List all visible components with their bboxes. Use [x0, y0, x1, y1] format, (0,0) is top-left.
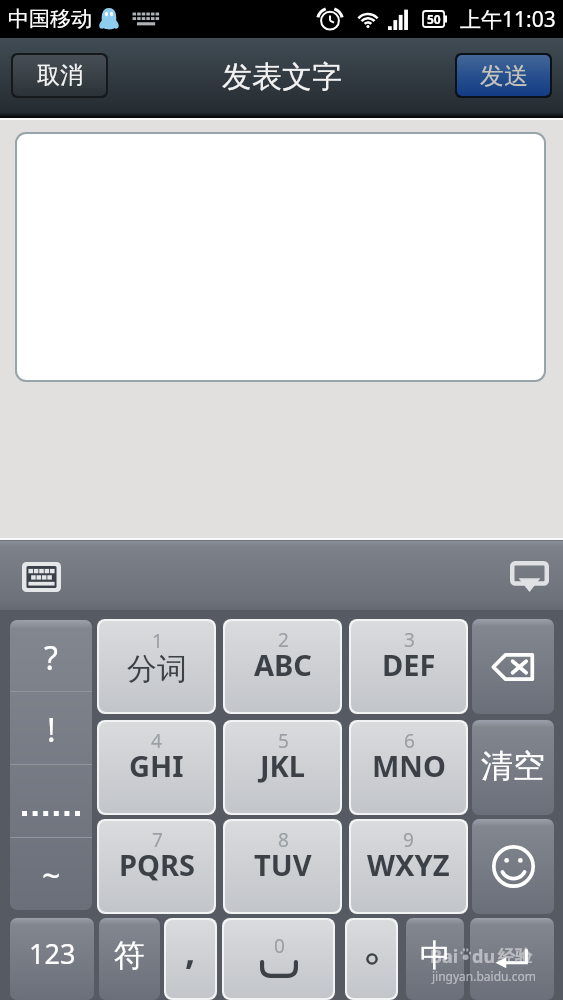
staticText: 2 [278, 627, 289, 653]
staticText: ABC [254, 645, 312, 684]
staticText: du [472, 944, 496, 969]
button[interactable]: 9 [351, 821, 466, 912]
staticText: 6 [404, 728, 415, 754]
staticText: 123 [29, 935, 76, 972]
staticText: 符 [114, 936, 145, 975]
button[interactable] [347, 920, 396, 998]
button[interactable]: 发送 [457, 55, 550, 96]
staticText: DEF [382, 645, 436, 684]
staticText: 分词 [127, 650, 187, 688]
staticText: 经验 [498, 946, 532, 967]
button[interactable]: 3 [351, 621, 466, 712]
button[interactable]: Switch input method [17, 553, 65, 601]
staticText: 取消 [37, 61, 83, 90]
button[interactable]: 中 [406, 918, 464, 1000]
button[interactable]: Emoji [472, 819, 554, 914]
staticText: 0 [274, 933, 285, 959]
staticText: , [185, 926, 196, 975]
staticText: Bai [430, 944, 459, 969]
button[interactable]: 0 [224, 920, 333, 998]
staticText: JKL [260, 746, 306, 785]
staticText: 发送 [480, 61, 528, 91]
button[interactable]: , [166, 920, 215, 998]
button[interactable]: 123 [10, 918, 94, 1000]
button[interactable]: Hide keyboard [505, 552, 553, 600]
staticText: ~ [42, 853, 61, 897]
staticText: 中 [420, 936, 451, 975]
staticText: 清空 [481, 746, 545, 786]
staticText: ? [44, 636, 58, 680]
staticText: 9 [403, 827, 414, 853]
staticText: 4 [151, 728, 162, 754]
button[interactable]: Delete [472, 619, 554, 714]
button[interactable]: ? [10, 620, 92, 691]
staticText: 发表文字 [222, 58, 342, 96]
staticText: 5 [278, 728, 289, 754]
button[interactable]: 1 [99, 621, 214, 712]
staticText: 1 [152, 628, 163, 654]
button[interactable]: 5 [225, 722, 340, 813]
staticText: PQRS [119, 845, 195, 884]
staticText: 中国移动 [8, 6, 92, 32]
button[interactable]: 清空 [472, 720, 554, 815]
button[interactable]: 2 [225, 621, 340, 712]
staticText: MNO [372, 746, 446, 785]
button[interactable] [10, 765, 92, 837]
staticText: 7 [152, 827, 163, 853]
staticText: TUV [254, 845, 312, 884]
staticText: 50 [427, 11, 441, 27]
button[interactable]: ~ [10, 838, 92, 910]
button[interactable]: 6 [351, 722, 466, 813]
button[interactable]: 取消 [13, 55, 106, 96]
button[interactable]: 符 [99, 918, 160, 1000]
staticText: 3 [404, 627, 415, 653]
button[interactable]: 4 [99, 722, 214, 813]
staticText: ! [47, 708, 56, 752]
staticText: 8 [278, 827, 289, 853]
button[interactable]: 8 [225, 821, 340, 912]
button[interactable]: ! [10, 692, 92, 764]
staticText: GHI [129, 746, 184, 785]
button[interactable]: Enter [470, 918, 554, 1000]
button[interactable]: 7 [99, 821, 214, 912]
staticText: 上午11:03 [460, 5, 556, 34]
staticText: WXYZ [367, 845, 450, 884]
staticText: jingyan.baidu.com [432, 968, 536, 984]
